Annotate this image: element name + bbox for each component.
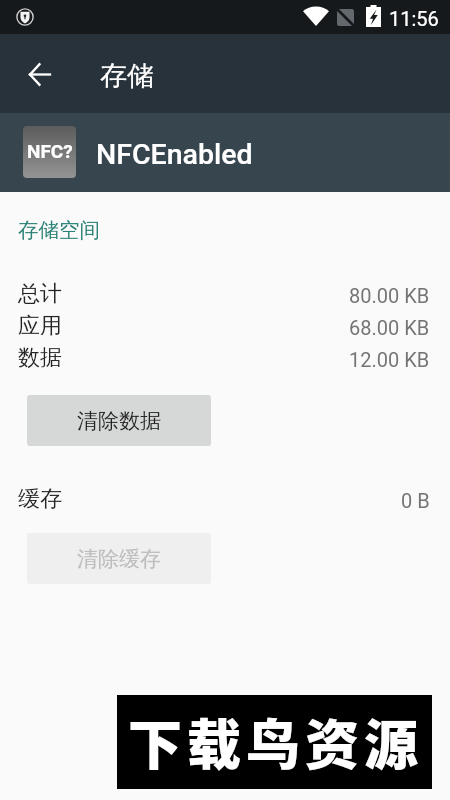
button[interactable]: Back [16, 51, 61, 96]
staticText: 68.00 KB [349, 316, 430, 339]
staticText: 数据 [18, 344, 62, 372]
staticText: 11:56 [389, 7, 439, 30]
staticText: 80.00 KB [349, 284, 430, 307]
button[interactable]: 清除数据 [27, 395, 211, 446]
staticText: NFCEnabled [96, 138, 253, 171]
staticText: 12.00 KB [349, 348, 430, 371]
staticText: 下载鸟资源 [128, 702, 423, 780]
staticText: 清除缓存 [77, 546, 161, 572]
staticText: 应用 [18, 312, 62, 340]
button[interactable]: 清除缓存 [27, 533, 211, 584]
staticText: 清除数据 [77, 408, 161, 434]
staticText: NFC? [27, 140, 73, 162]
staticText: 总计 [18, 280, 62, 308]
staticText: 0 B [401, 489, 430, 512]
staticText: 存储空间 [18, 217, 100, 243]
staticText: 存储 [100, 59, 154, 93]
staticText: 缓存 [18, 485, 62, 513]
